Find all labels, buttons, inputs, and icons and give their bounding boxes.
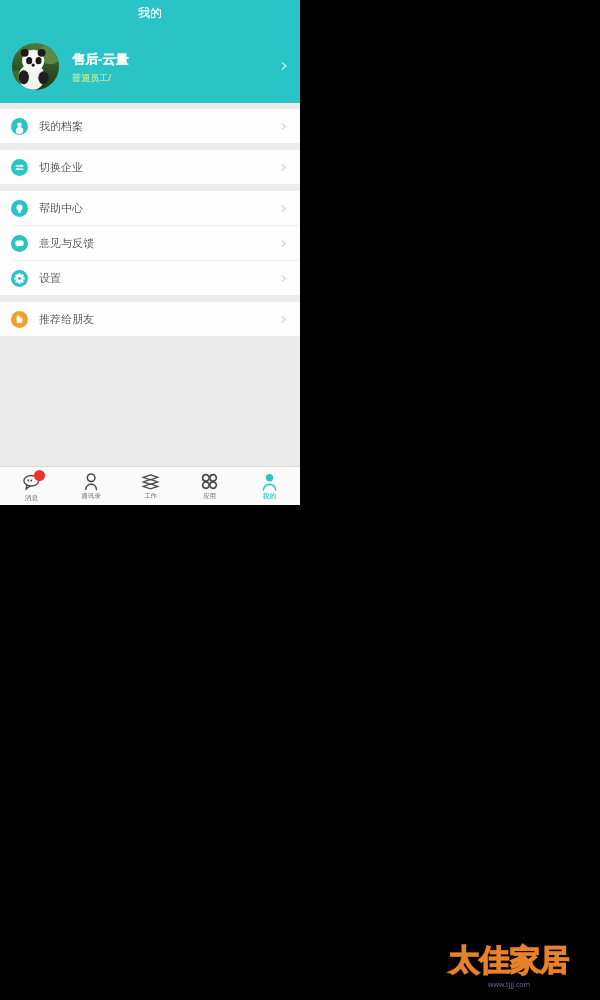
- button[interactable]: 售后-云量: [0, 32, 300, 100]
- staticText: 帮助中心: [39, 201, 278, 215]
- button[interactable]: 工作: [122, 472, 178, 500]
- button[interactable]: 设置: [0, 261, 300, 295]
- button[interactable]: 我的: [241, 472, 297, 500]
- staticText: 应用: [203, 492, 216, 500]
- staticText: 通讯录: [81, 492, 101, 500]
- button[interactable]: 推荐给朋友: [0, 302, 300, 336]
- button[interactable]: 我的档案: [0, 109, 300, 143]
- staticText: 工作: [144, 492, 157, 500]
- staticText: 太佳家居: [449, 942, 569, 980]
- staticText: 推荐给朋友: [39, 312, 278, 326]
- staticText: www.tjjj.com: [488, 980, 531, 990]
- staticText: 我的: [0, 5, 300, 20]
- button[interactable]: 通讯录: [63, 472, 119, 500]
- button[interactable]: 意见与反馈: [0, 226, 300, 260]
- button[interactable]: 帮助中心: [0, 191, 300, 225]
- staticText: 意见与反馈: [39, 236, 278, 250]
- button[interactable]: 消息: [3, 470, 59, 502]
- button[interactable]: 切换企业: [0, 150, 300, 184]
- staticText: 设置: [39, 271, 278, 285]
- staticText: 消息: [25, 494, 38, 502]
- staticText: 售后-云量: [72, 50, 129, 68]
- staticText: 我的档案: [39, 119, 278, 133]
- staticText: 切换企业: [39, 160, 278, 174]
- staticText: 我的: [263, 492, 276, 500]
- button[interactable]: 应用: [181, 472, 237, 500]
- staticText: 普通员工/: [72, 71, 112, 83]
